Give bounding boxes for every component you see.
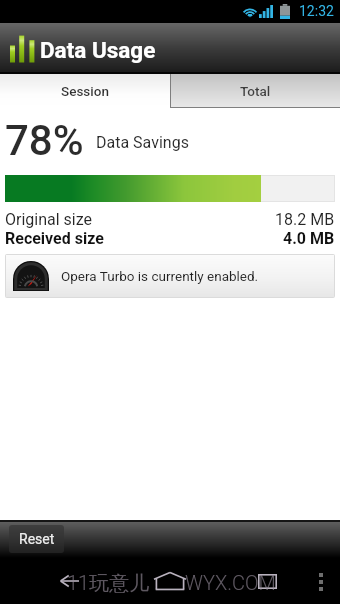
staticText: 4.0 MB — [283, 229, 335, 248]
staticText: Total — [240, 83, 271, 99]
button[interactable]: Home — [150, 562, 190, 600]
staticText: WYX.COM — [185, 571, 276, 594]
button[interactable]: Opera Turbo is currently enabled. — [6, 255, 334, 297]
staticText: Received size — [5, 229, 104, 248]
button[interactable]: Recent apps — [249, 564, 285, 598]
staticText: Opera Turbo is currently enabled. — [61, 268, 259, 284]
staticText: Original size — [5, 210, 93, 229]
staticText: 12:32 — [299, 3, 334, 19]
staticText: Data Usage — [40, 37, 156, 63]
button[interactable]: Session — [0, 74, 170, 108]
staticText: Reset — [19, 531, 55, 547]
button[interactable]: Reset — [9, 525, 64, 553]
button[interactable]: More options — [307, 568, 335, 596]
staticText: Session — [61, 83, 109, 99]
staticText: 11玩意儿 — [67, 571, 150, 596]
button[interactable]: Back — [48, 563, 90, 599]
staticText: Data Savings — [96, 133, 189, 152]
staticText: 18.2 MB — [275, 210, 335, 229]
staticText: 78% — [5, 116, 84, 165]
button[interactable]: Total — [170, 74, 340, 108]
